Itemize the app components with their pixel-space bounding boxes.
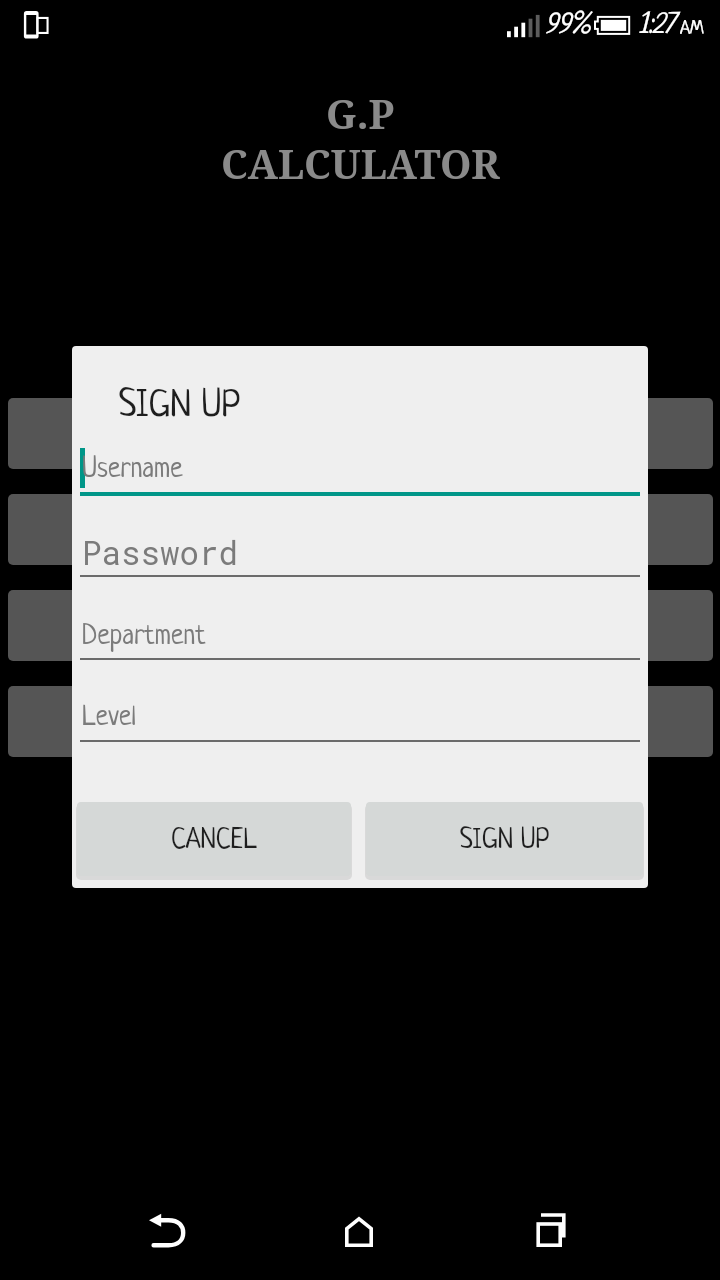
button[interactable]: Level [80, 670, 640, 746]
staticText: CANCEL [171, 826, 257, 856]
staticText: Username [82, 455, 183, 485]
staticText: CALCULATOR [221, 136, 500, 190]
button[interactable]: Back [127, 1192, 207, 1272]
staticText: AM [680, 19, 704, 39]
staticText: SIGN UP [460, 826, 550, 856]
staticText: 1:27 [638, 11, 675, 42]
staticText: Password [82, 531, 239, 574]
button[interactable]: Department [80, 588, 640, 664]
button[interactable]: Home [320, 1192, 400, 1272]
button[interactable] [8, 398, 713, 469]
button[interactable]: Password [80, 505, 640, 581]
button[interactable]: Username [80, 422, 640, 498]
button[interactable]: SIGN UP [366, 802, 643, 876]
button[interactable] [8, 686, 713, 757]
other: Battery 99 percent [594, 15, 632, 36]
staticText: SIGN UP [119, 387, 242, 427]
button[interactable] [8, 590, 713, 661]
button[interactable] [8, 494, 713, 565]
staticText: Level [82, 703, 137, 733]
staticText: Department [82, 622, 206, 652]
other: Multi window [22, 10, 52, 40]
staticText: G.P [326, 86, 395, 140]
staticText: 99% [545, 11, 590, 42]
button[interactable]: Recents [512, 1192, 592, 1272]
button[interactable]: CANCEL [77, 802, 351, 876]
